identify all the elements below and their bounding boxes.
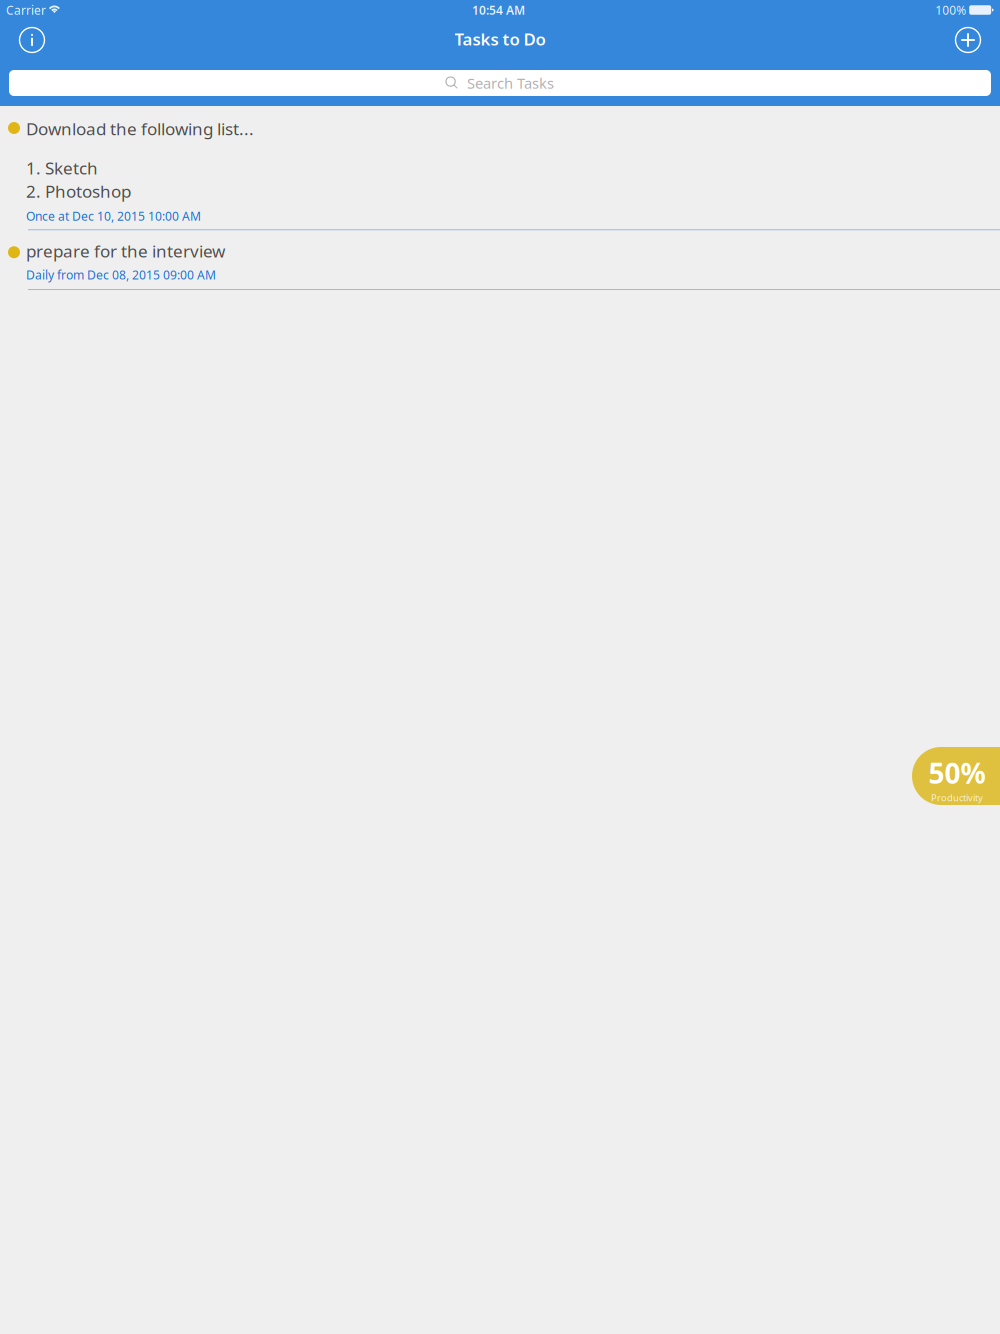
staticText: Search Tasks <box>467 73 554 93</box>
staticText: prepare for the interview <box>26 239 225 262</box>
staticText: 1. Sketch <box>26 156 98 179</box>
button[interactable]: Search Tasks <box>9 70 991 96</box>
staticText: 10:54 AM <box>472 2 525 18</box>
staticText: Carrier <box>6 2 46 18</box>
staticText: 50% <box>928 754 985 791</box>
button[interactable]: prepare for the interview <box>0 230 1000 290</box>
staticText: Download the following list... <box>26 117 254 140</box>
button[interactable]: Info <box>15 23 49 57</box>
button[interactable]: Add Task <box>951 23 985 57</box>
button[interactable]: Download the following list... <box>0 106 1000 230</box>
staticText: Tasks to Do <box>454 28 545 50</box>
staticText: 100% <box>935 2 966 18</box>
staticText: Productivity <box>931 791 983 804</box>
staticText: 2. Photoshop <box>26 179 131 203</box>
staticText: Once at Dec 10, 2015 10:00 AM <box>26 208 201 224</box>
staticText: Daily from Dec 08, 2015 09:00 AM <box>26 266 216 283</box>
